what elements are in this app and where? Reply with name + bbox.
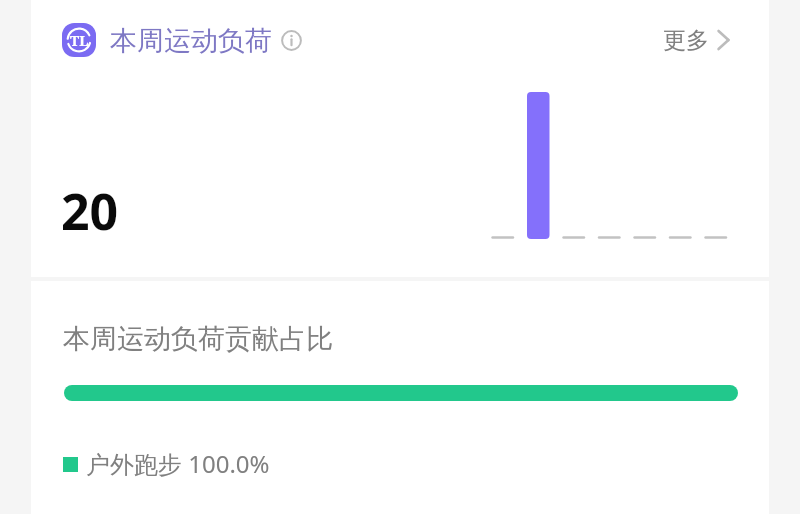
staticText: TL (70, 31, 89, 50)
staticText: 户外跑步 100.0% (86, 447, 270, 480)
button[interactable]: About training load (281, 30, 302, 51)
other: Weekly training load chart (491, 84, 771, 239)
button[interactable]: 户外跑步 100.0% (63, 445, 270, 483)
staticText: 本周运动负荷 (110, 24, 272, 58)
button[interactable]: 更多 (647, 0, 769, 80)
staticText: 更多 (663, 26, 709, 55)
staticText: 20 (61, 177, 119, 245)
other: Training load (62, 23, 96, 57)
staticText: 本周运动负荷贡献占比 (63, 322, 333, 356)
button[interactable]: Training load (31, 0, 302, 80)
